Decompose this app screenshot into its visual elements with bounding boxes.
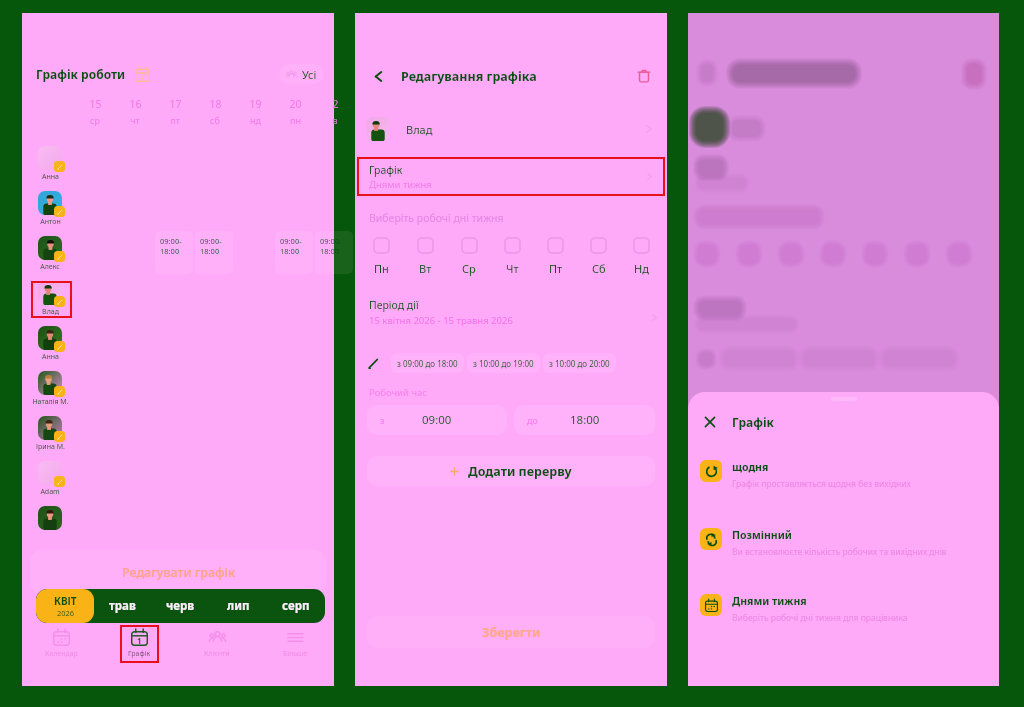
staticText: Редагування графіка [401, 68, 537, 85]
staticText: трав [109, 598, 136, 614]
button[interactable]: Більше [256, 625, 334, 665]
button[interactable]: Пн [359, 237, 403, 276]
staticText: 09:00- 18:00 [160, 236, 182, 256]
staticText: з 09:00 до 18:00 [397, 358, 458, 369]
button[interactable]: КВІТ [36, 589, 94, 623]
button[interactable]: 09:00- 18:00 [155, 231, 193, 274]
staticText: 19 [249, 97, 262, 111]
button[interactable]: Працівник [27, 506, 73, 532]
button[interactable]: 1 [100, 625, 178, 665]
staticText: Антон [40, 217, 61, 227]
staticText: 18:00 [570, 412, 600, 428]
button[interactable]: Алекс [27, 236, 73, 272]
staticText: Сб [592, 261, 606, 276]
button[interactable]: Close [701, 413, 719, 431]
button[interactable]: Нд [620, 237, 663, 276]
button[interactable]: 09:00- 18:00 [315, 231, 353, 274]
staticText: Пт [549, 261, 563, 276]
button[interactable]: Чт [491, 237, 534, 276]
button[interactable]: з 09:00 до 18:00 [391, 353, 464, 373]
staticText: з 10:00 до 20:00 [549, 358, 610, 369]
button[interactable]: з [367, 405, 507, 435]
button[interactable]: черв [151, 589, 209, 623]
button[interactable]: серп [267, 589, 325, 623]
staticText: Виберіть робочі дні тижня [369, 211, 504, 225]
staticText: 15 [89, 97, 102, 111]
staticText: 2026 [57, 608, 75, 618]
button[interactable]: Ірина М. [27, 416, 73, 452]
button[interactable]: лип [209, 589, 267, 623]
staticText: до [527, 414, 538, 426]
staticText: Днями тижня [732, 594, 807, 608]
staticText: Позмінний [732, 528, 792, 542]
staticText: Анна [42, 352, 59, 362]
button[interactable]: Днями тижня [688, 594, 999, 624]
staticText: 15 квітня 2026 - 15 травня 2026 [369, 314, 513, 327]
button[interactable]: Анна [27, 326, 73, 362]
button[interactable]: 09:00- 18:00 [275, 231, 313, 274]
button[interactable]: Вт [403, 237, 447, 276]
button[interactable]: Анна [27, 146, 73, 182]
staticText: 20 [289, 97, 302, 111]
button[interactable]: Ср [447, 237, 491, 276]
staticText: Алекс [40, 262, 60, 272]
staticText: Редагувати графік [122, 564, 235, 581]
button[interactable]: Антон [27, 191, 73, 227]
staticText: Календар [45, 649, 78, 659]
staticText: серп [282, 598, 310, 614]
staticText: Ви встановлюєте кількість робочих та вих… [732, 546, 947, 558]
button[interactable]: Зберегти [367, 616, 655, 648]
staticText: Графік проставляється щодня без вихідних [732, 478, 911, 490]
button[interactable]: Позмінний [688, 528, 999, 558]
button[interactable]: Сб [577, 237, 620, 276]
button[interactable]: Adam [27, 461, 73, 497]
button[interactable]: з 10:00 до 20:00 [543, 353, 616, 373]
button[interactable]: Back [369, 67, 387, 85]
staticText: Пн [374, 261, 389, 276]
staticText: Влад [406, 122, 433, 137]
staticText: з [380, 414, 385, 426]
staticText: 17 [169, 97, 182, 111]
button[interactable]: Влад [27, 281, 73, 317]
button[interactable]: Пт [534, 237, 577, 276]
staticText: Adam [40, 487, 60, 497]
staticText: 16 [129, 97, 142, 111]
button[interactable]: Графік [357, 157, 665, 196]
staticText: пн [290, 114, 301, 126]
staticText: 18 [209, 97, 222, 111]
staticText: 2 [332, 97, 339, 111]
staticText: Ірина М. [36, 442, 65, 452]
staticText: Днями тижня [369, 178, 432, 191]
button[interactable]: Додати перерву [367, 456, 655, 486]
button[interactable]: щодня [688, 460, 999, 490]
staticText: Графік [369, 163, 403, 177]
staticText: Клієнти [204, 649, 230, 659]
button[interactable]: Delete [635, 67, 653, 85]
staticText: 1 [137, 635, 142, 646]
staticText: Вт [419, 261, 432, 276]
button[interactable]: Усі [279, 64, 324, 84]
button[interactable]: до [514, 405, 655, 435]
button[interactable]: Клієнти [178, 625, 256, 665]
button[interactable]: Наталія М. [27, 371, 73, 407]
staticText: Більше [283, 649, 308, 659]
staticText: Анна [42, 172, 59, 182]
button[interactable]: 09:00- 18:00 [195, 231, 233, 274]
button[interactable]: Влад [355, 114, 667, 144]
button[interactable]: Календар [22, 625, 100, 665]
staticText: ср [90, 114, 100, 126]
button[interactable]: з 10:00 до 19:00 [467, 353, 540, 373]
button[interactable]: трав [94, 589, 151, 623]
staticText: Влад [42, 307, 59, 317]
staticText: Усі [302, 67, 317, 82]
staticText: Робочий час [369, 386, 427, 399]
button[interactable]: Редагувати графік [30, 550, 326, 594]
staticText: Додати перерву [468, 463, 572, 480]
staticText: Графік роботи [36, 66, 126, 82]
staticText: Виберіть робочі дні тижня для працівника [732, 612, 908, 624]
staticText: з 10:00 до 19:00 [473, 358, 534, 369]
staticText: Нд [634, 261, 649, 276]
staticText: 09:00- 18:00 [320, 236, 342, 256]
staticText: в [332, 114, 338, 126]
staticText: чт [130, 114, 140, 126]
